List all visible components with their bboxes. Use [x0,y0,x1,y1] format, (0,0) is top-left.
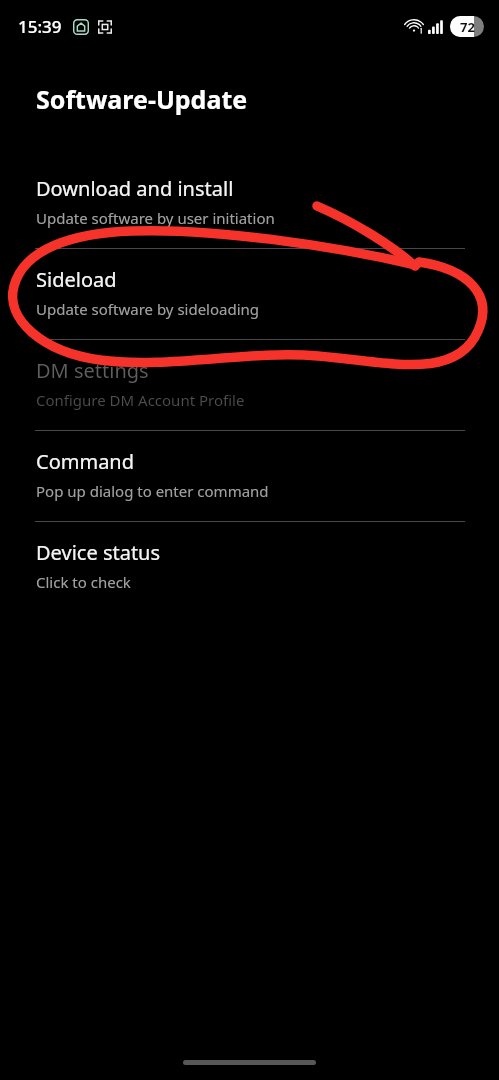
staticText: Download and install [36,175,234,202]
staticText: Click to check [36,572,131,592]
staticText: Command [36,448,135,475]
staticText: Update software by sideloading [36,299,260,319]
button[interactable]: Download and install [0,158,499,248]
staticText: 15:39 [18,15,62,38]
staticText: Device status [36,539,161,566]
staticText: Update software by user initiation [36,208,275,228]
button[interactable]: Device status [0,522,499,612]
other: Screenshot [97,19,113,35]
button[interactable]: Command [0,431,499,521]
staticText: Configure DM Account Profile [36,390,245,410]
staticText: Pop up dialog to enter command [36,481,269,501]
staticText: Software-Update [36,82,248,116]
staticText: DM settings [36,357,149,384]
button[interactable]: Sideload [0,249,499,339]
other: Secure folder [73,19,89,35]
button[interactable]: DM settings [0,340,499,430]
staticText: Sideload [36,266,117,293]
staticText: 72 [460,18,475,36]
